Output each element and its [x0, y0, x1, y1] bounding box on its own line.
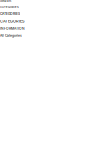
staticText: CATEGORIES [0, 5, 19, 9]
staticText: CATEGORIES [0, 12, 20, 16]
staticText: INFORMATION [0, 26, 25, 30]
staticText: CATEGORIES [0, 0, 11, 2]
staticText: CATEGORIES [0, 19, 25, 23]
staticText: All Categories [0, 34, 22, 38]
